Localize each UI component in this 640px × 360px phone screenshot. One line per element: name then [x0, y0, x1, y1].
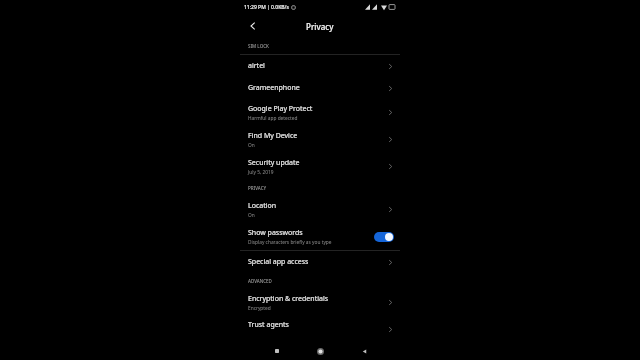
button[interactable]: Trust agents	[240, 316, 400, 342]
staticText: July 5, 2019	[248, 169, 274, 176]
staticText: Security update	[248, 158, 300, 168]
button[interactable]: Google Play Protect	[240, 99, 400, 126]
staticText: Special app access	[248, 257, 309, 267]
button[interactable]: Encryption & credentials	[240, 289, 400, 316]
button[interactable]: Show passwords toggle	[374, 232, 394, 242]
staticText: Display characters briefly as you type	[248, 239, 332, 246]
staticText: Location	[248, 201, 277, 211]
staticText: Trust agents	[248, 320, 289, 330]
button[interactable]: Security update	[240, 153, 400, 180]
staticText: SIM LOCK	[248, 43, 269, 49]
button[interactable]: Recents	[270, 344, 284, 358]
staticText: Grameenphone	[248, 83, 300, 93]
staticText: On	[248, 212, 255, 219]
staticText: airtel	[248, 61, 265, 71]
button[interactable]: Home	[313, 344, 327, 358]
staticText: 11:29 PM | 0.0KB/s	[244, 4, 289, 11]
button[interactable]: Back	[357, 344, 371, 358]
button[interactable]: Grameenphone	[240, 77, 400, 99]
staticText: Encrypted	[248, 305, 271, 312]
staticText: Harmful app detected	[248, 115, 298, 122]
staticText: On	[248, 142, 255, 149]
staticText: Find My Device	[248, 131, 298, 141]
button[interactable]: Find My Device	[240, 126, 400, 153]
staticText: Privacy	[306, 21, 334, 32]
button[interactable]: Location	[240, 196, 400, 223]
staticText: ADVANCED	[248, 278, 272, 284]
button[interactable]: Show passwords	[240, 223, 400, 250]
button[interactable]: airtel	[240, 55, 400, 77]
button[interactable]: Special app access	[240, 251, 400, 273]
staticText: Show passwords	[248, 228, 303, 238]
staticText: Encryption & credentials	[248, 294, 329, 304]
button[interactable]: Back	[244, 17, 262, 35]
staticText: PRIVACY	[248, 185, 267, 191]
staticText: Google Play Protect	[248, 104, 313, 114]
